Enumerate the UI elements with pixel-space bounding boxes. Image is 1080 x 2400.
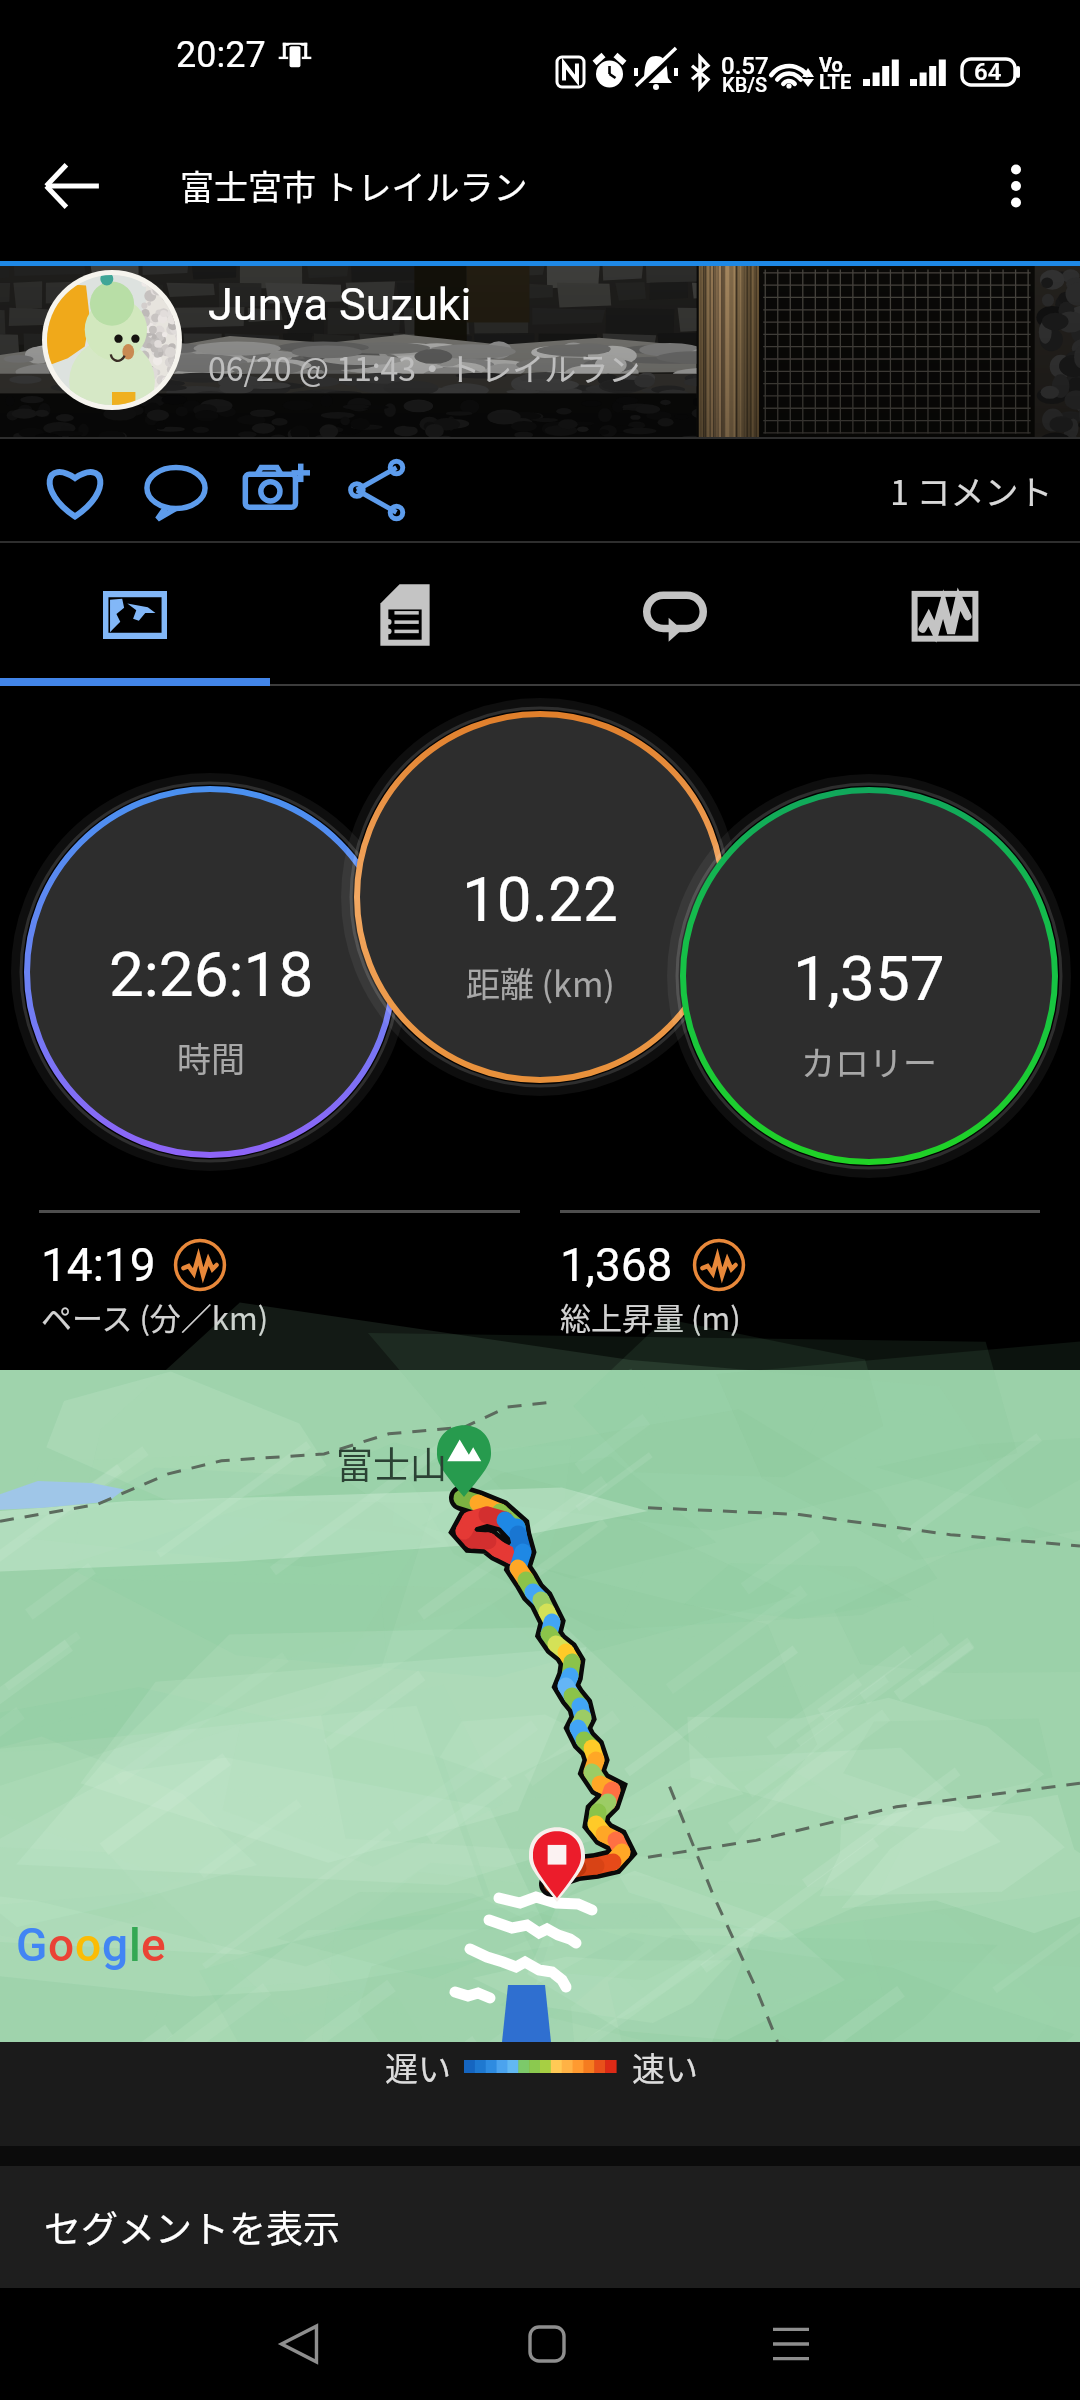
staticText: カロリー	[801, 1037, 937, 1086]
staticText: g	[102, 1918, 129, 1972]
staticText: 遅い	[385, 2043, 451, 2091]
staticText: 1 コメント	[890, 466, 1053, 515]
staticText: o	[75, 1918, 102, 1972]
button[interactable]: Map tab	[0, 543, 270, 686]
button[interactable]: Share	[327, 440, 428, 540]
staticText: ペース (分／km)	[41, 1294, 269, 1339]
staticText: 20:27	[176, 34, 266, 76]
button[interactable]: セグメントを表示	[0, 2166, 1080, 2288]
button[interactable]: Analysis tab	[810, 543, 1080, 686]
staticText: KB/S	[722, 73, 768, 96]
staticText: 06/20 @ 11:43・トレイルラン	[208, 344, 641, 390]
staticText: e	[141, 1918, 166, 1972]
staticText: 距離 (km)	[466, 958, 615, 1007]
staticText: 2:26:18	[109, 938, 314, 1011]
staticText: 0.57	[721, 52, 769, 80]
button[interactable]: Like	[24, 440, 125, 540]
button[interactable]: Details tab	[270, 543, 540, 686]
button[interactable]: Add photo	[226, 440, 327, 540]
button[interactable]: Laps tab	[540, 543, 810, 686]
staticText: セグメントを表示	[44, 2200, 340, 2254]
staticText: Vo	[819, 53, 843, 76]
staticText: 総上昇量 (m)	[560, 1294, 741, 1339]
staticText: o	[48, 1918, 75, 1972]
button[interactable]: Athlete avatar	[42, 270, 182, 410]
staticText: Junya Suzuki	[208, 278, 472, 331]
staticText: 1,368	[560, 1238, 673, 1292]
button[interactable]: Recent apps	[736, 2289, 846, 2399]
button[interactable]: Back	[244, 2289, 354, 2399]
staticText: 14:19	[41, 1238, 156, 1292]
staticText: G	[16, 1918, 48, 1972]
staticText: 富士山	[336, 1436, 447, 1490]
button[interactable]: Back	[20, 134, 124, 238]
button[interactable]: Home	[492, 2289, 602, 2399]
staticText: 10.22	[462, 863, 618, 936]
staticText: l	[129, 1918, 141, 1972]
staticText: 富士宮市 トレイルラン	[180, 161, 528, 210]
staticText: 時間	[177, 1033, 245, 1082]
staticText: 64	[974, 58, 1002, 86]
button[interactable]: More options	[968, 138, 1064, 234]
staticText: LTE	[819, 70, 852, 93]
staticText: 1,357	[793, 942, 945, 1015]
button[interactable]: Comment	[125, 440, 226, 540]
staticText: 速い	[632, 2043, 698, 2091]
